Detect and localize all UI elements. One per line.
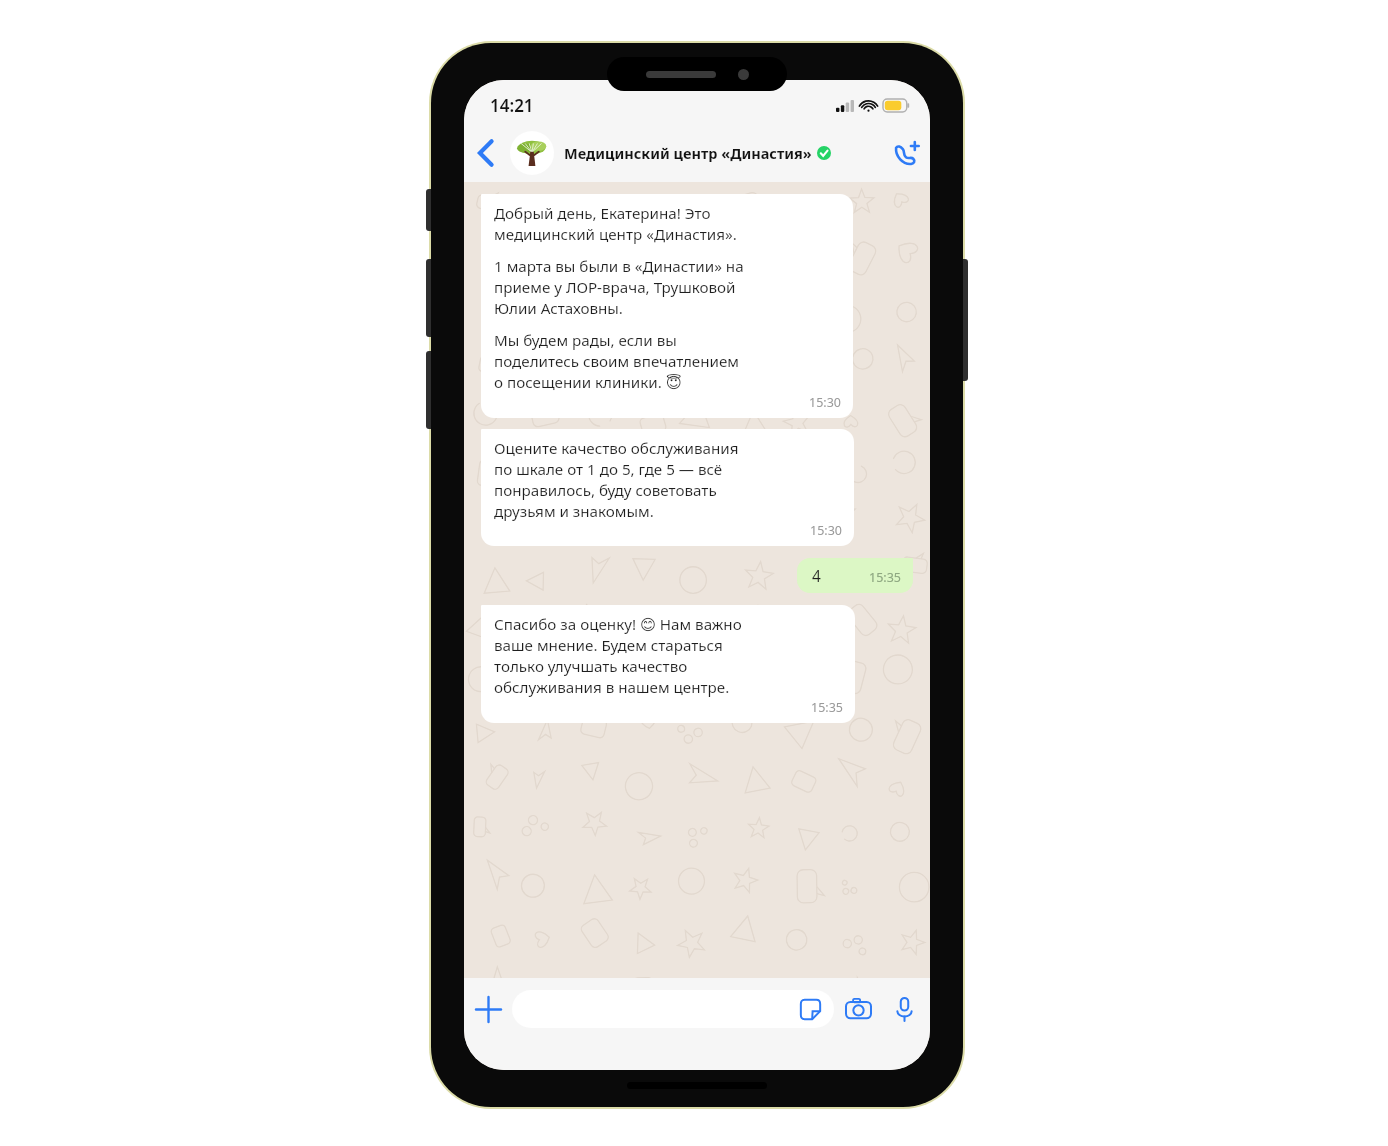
staticText: Мы будем рады, если вы bbox=[494, 330, 677, 351]
staticText: понравилось, буду советовать bbox=[494, 480, 717, 501]
staticText: поделитесь своим впечатлением bbox=[494, 351, 740, 372]
staticText: друзьям и знакомым. bbox=[494, 501, 654, 522]
staticText: ваше мнение. Будем стараться bbox=[494, 635, 723, 656]
button[interactable]: Добрый день, Екатерина! Это bbox=[481, 194, 853, 418]
staticText: 15:30 bbox=[810, 522, 842, 539]
staticText: 15:35 bbox=[869, 569, 901, 586]
staticText: Медицинский центр «Династия» bbox=[564, 143, 812, 163]
button[interactable]: Attach bbox=[464, 985, 512, 1033]
button[interactable]: Спасибо за оценку! 😊 Нам важно bbox=[481, 605, 855, 723]
staticText: 1 марта вы были в «Династии» на bbox=[494, 256, 744, 277]
staticText: Добрый день, Екатерина! Это bbox=[494, 203, 711, 224]
staticText: медицинский центр «Династия». bbox=[494, 224, 737, 245]
button[interactable]: Sticker bbox=[512, 990, 834, 1028]
staticText: Юлии Астаховны. bbox=[494, 298, 623, 319]
staticText: Спасибо за оценку! 😊 Нам важно bbox=[494, 614, 742, 635]
staticText: о посещении клиники. 😇 bbox=[494, 372, 682, 393]
button[interactable]: Медицинский центр «Династия» bbox=[510, 131, 884, 175]
staticText: 15:35 bbox=[811, 699, 843, 716]
button[interactable]: Sticker bbox=[797, 996, 823, 1022]
button[interactable]: 4 bbox=[797, 558, 913, 593]
staticText: 4 bbox=[812, 565, 821, 586]
button[interactable]: Call bbox=[884, 128, 930, 178]
button[interactable]: Voice message bbox=[882, 987, 926, 1031]
button[interactable]: Back bbox=[464, 128, 508, 178]
staticText: обслуживания в нашем центре. bbox=[494, 677, 730, 698]
staticText: Оцените качество обслуживания bbox=[494, 438, 739, 459]
staticText: приеме у ЛОР-врача, Трушковой bbox=[494, 277, 736, 298]
button[interactable]: Camera bbox=[834, 985, 882, 1033]
staticText: 14:21 bbox=[490, 94, 534, 117]
button[interactable]: Оцените качество обслуживания bbox=[481, 429, 854, 546]
staticText: только улучшать качество bbox=[494, 656, 688, 677]
staticText: по шкале от 1 до 5, где 5 — всё bbox=[494, 459, 723, 480]
staticText: 15:30 bbox=[809, 394, 841, 411]
